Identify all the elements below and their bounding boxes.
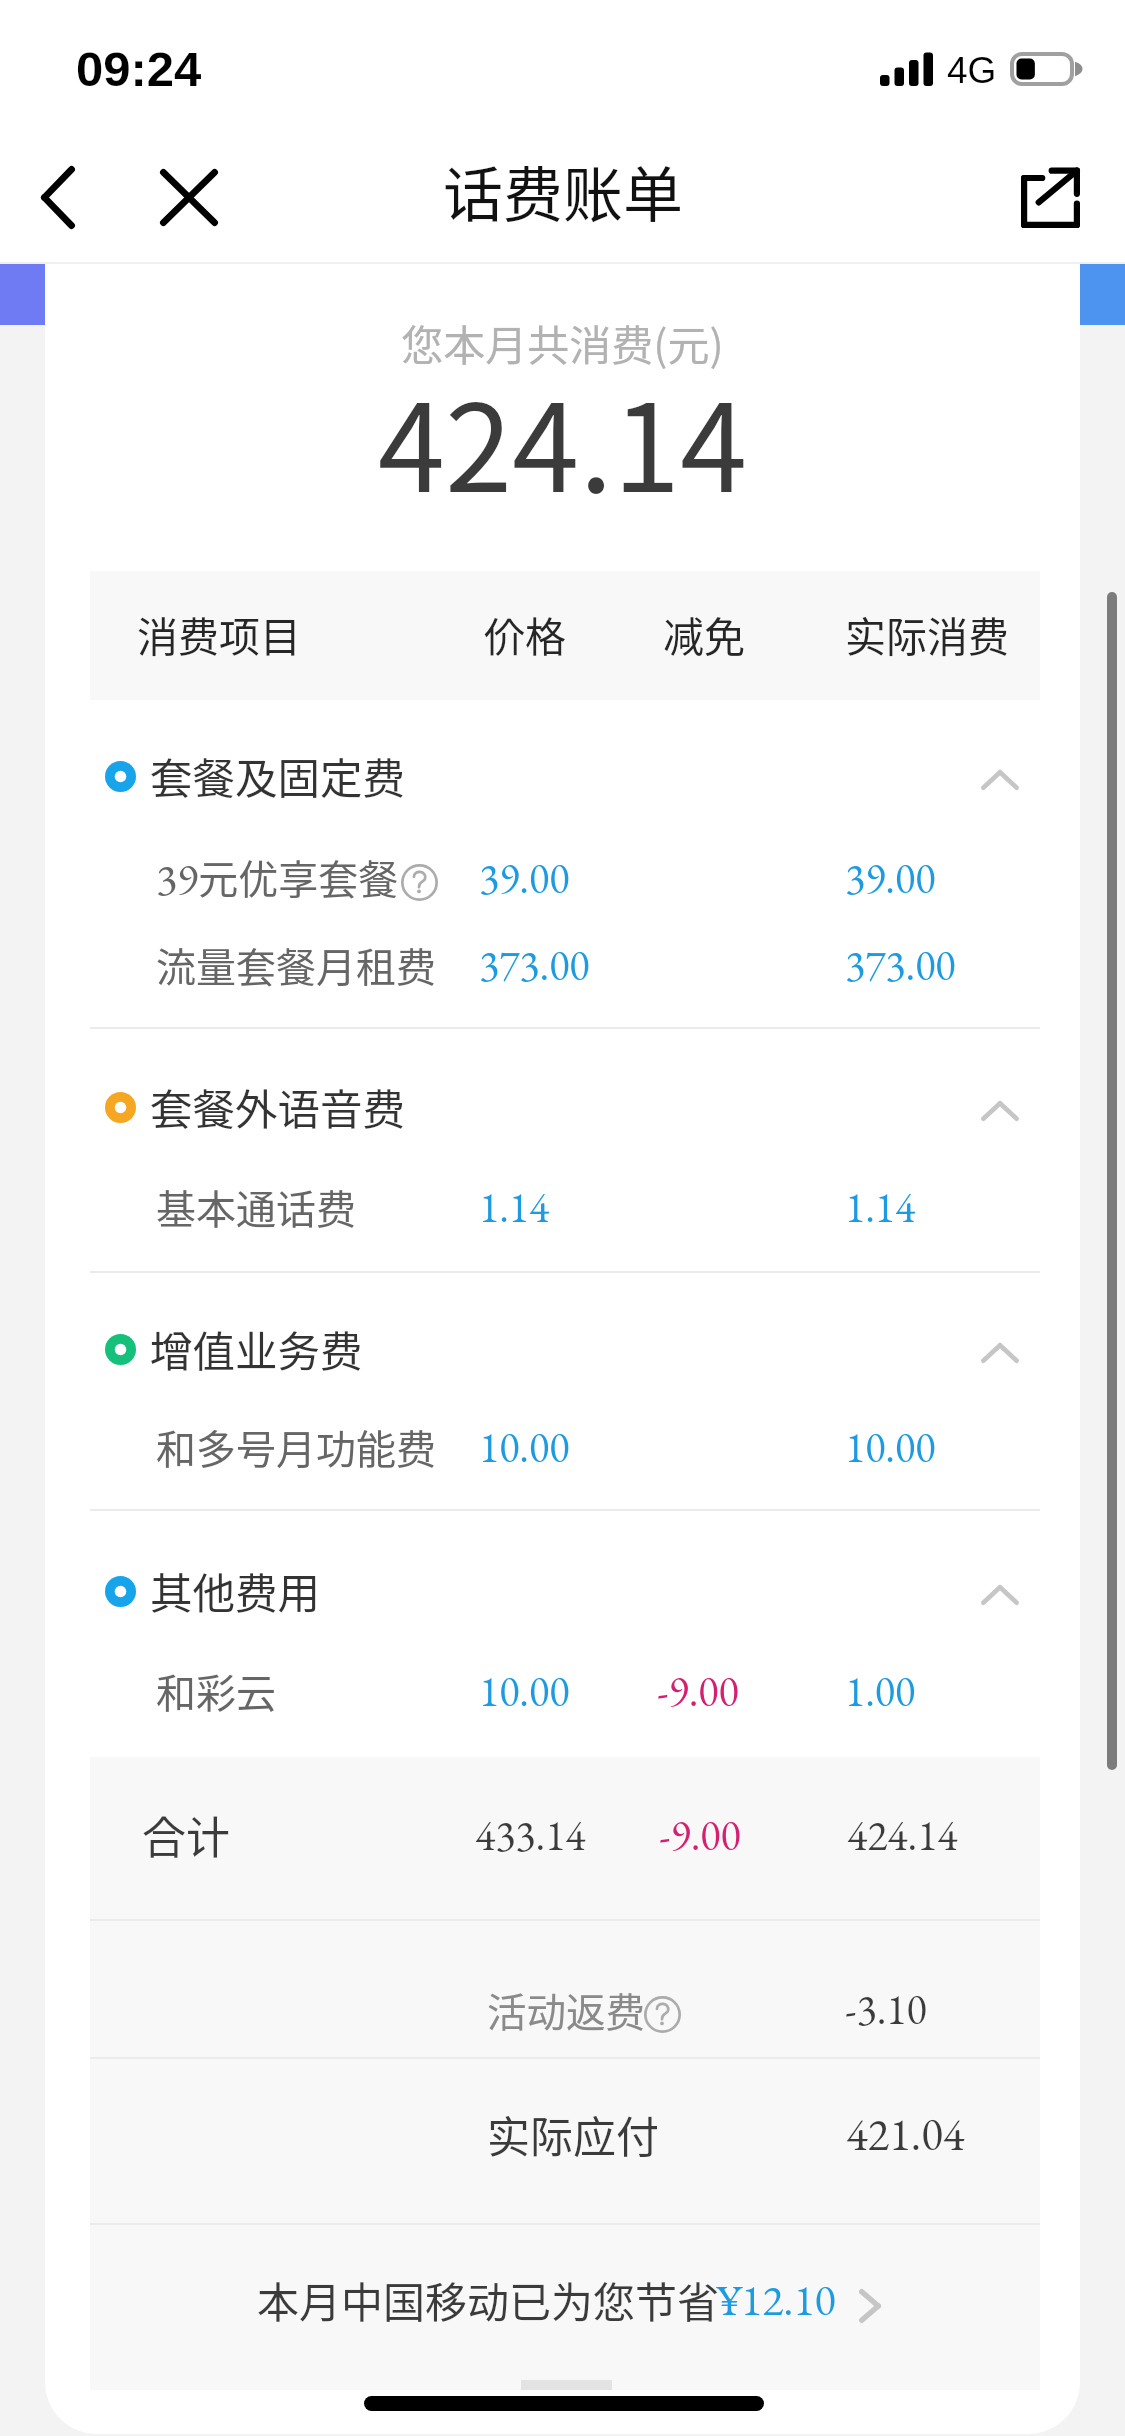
staticText: 和彩云 (156, 1662, 276, 1720)
staticText: -3.10 (845, 1982, 927, 2037)
staticText: -9.00 (657, 1664, 739, 1719)
button[interactable]: Help (644, 1996, 681, 2033)
staticText: ¥12.10 (716, 2271, 836, 2328)
staticText: 373.00 (479, 938, 590, 993)
staticText: 4G (947, 50, 997, 91)
staticText: 433.14 (475, 1808, 586, 1863)
staticText: 实际消费 (845, 604, 1009, 663)
staticText: 减免 (663, 604, 745, 663)
staticText: 其他费用 (150, 1560, 321, 1622)
staticText: 套餐及固定费 (150, 745, 406, 807)
button[interactable]: 套餐及固定费 (90, 710, 1040, 842)
staticText: 10.00 (845, 1420, 936, 1475)
staticText: -9.00 (659, 1808, 741, 1863)
staticText: 09:24 (76, 42, 202, 97)
staticText: 10.00 (479, 1420, 570, 1475)
button[interactable]: 本月中国移动已为您节省 (90, 2216, 1040, 2381)
staticText: 373.00 (845, 938, 956, 993)
button[interactable]: 增值业务费 (90, 1283, 1040, 1415)
staticText: 合计 (142, 1803, 230, 1867)
staticText: 实际应付 (487, 2103, 659, 2165)
staticText: 增值业务费 (150, 1318, 363, 1380)
staticText: 10.00 (479, 1664, 570, 1719)
staticText: 您本月共消费(元) (0, 312, 1125, 373)
staticText: 1.14 (845, 1180, 916, 1235)
staticText: 消费项目 (137, 604, 301, 663)
button[interactable]: Back (10, 136, 106, 258)
button[interactable]: Close (140, 136, 237, 258)
staticText: 1.00 (845, 1664, 916, 1719)
staticText: 流量套餐月租费 (156, 936, 436, 994)
staticText: 1.14 (479, 1180, 550, 1235)
staticText: 套餐外语音费 (150, 1076, 406, 1138)
staticText: 424.14 (0, 352, 1125, 527)
staticText: 421.04 (846, 2105, 965, 2164)
staticText: 39.00 (479, 851, 570, 906)
button[interactable]: Share (1004, 136, 1096, 258)
staticText: 424.14 (847, 1808, 958, 1863)
staticText: 活动返费 (487, 1981, 645, 2038)
staticText: 价格 (484, 604, 566, 663)
staticText: 39.00 (845, 851, 936, 906)
button[interactable]: Help (401, 864, 438, 901)
staticText: 基本通话费 (156, 1178, 356, 1236)
staticText: 话费账单 (443, 147, 683, 234)
staticText: 和多号月功能费 (156, 1418, 436, 1476)
staticText: 本月中国移动已为您节省 (257, 2269, 720, 2330)
button[interactable]: 其他费用 (90, 1525, 1040, 1657)
button[interactable]: 套餐外语音费 (90, 1041, 1040, 1173)
staticText: 39元优享套餐 (156, 848, 399, 908)
